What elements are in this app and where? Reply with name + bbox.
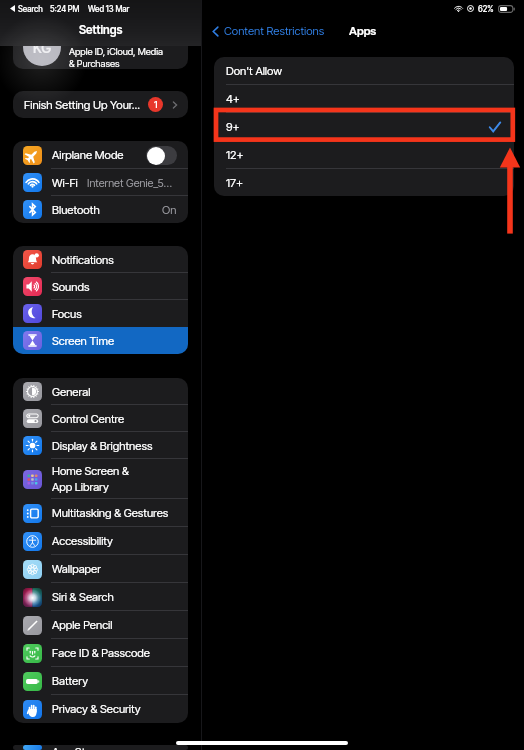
button[interactable]: Focus — [13, 300, 188, 327]
staticText: Home Screen & — [52, 464, 129, 478]
staticText: Screen Time — [52, 334, 115, 348]
button[interactable]: Control Centre — [13, 405, 188, 432]
staticText: Siri & Search — [52, 590, 114, 604]
staticText: Accessibility — [52, 534, 113, 548]
button[interactable]: Battery — [13, 667, 188, 695]
staticText: Focus — [52, 307, 82, 321]
staticText: 9+ — [226, 120, 240, 134]
button[interactable]: 4+ — [214, 85, 514, 112]
staticText: Battery — [52, 674, 89, 688]
staticText: Content Restrictions — [224, 24, 325, 38]
staticText: General — [52, 385, 91, 399]
staticText: Apps — [349, 24, 377, 38]
staticText: & Purchases — [69, 58, 120, 69]
staticText: Sounds — [52, 280, 90, 294]
button[interactable]: Don't Allow — [214, 57, 514, 84]
button[interactable]: Finish Setting Up Your... — [13, 91, 188, 118]
button[interactable]: Wi-Fi — [13, 169, 188, 196]
button[interactable]: Apple Pencil — [13, 611, 188, 639]
button[interactable]: Bluetooth — [13, 196, 188, 223]
staticText: Search — [18, 4, 43, 14]
staticText: App Store — [52, 745, 102, 750]
button[interactable]: KG — [13, 29, 188, 69]
staticText: Multitasking & Gestures — [52, 506, 169, 520]
button[interactable]: Accessibility — [13, 527, 188, 555]
staticText: Finish Setting Up Your... — [24, 98, 141, 112]
staticText: Don't Allow — [226, 64, 282, 78]
button[interactable]: Notifications — [13, 246, 188, 273]
staticText: 4+ — [226, 92, 240, 106]
staticText: 5:24 PM — [50, 4, 80, 14]
staticText: Airplane Mode — [52, 148, 124, 162]
staticText: Bluetooth — [52, 203, 100, 217]
button[interactable]: Sounds — [13, 273, 188, 300]
button[interactable]: Privacy & Security — [13, 695, 188, 723]
button[interactable]: Airplane Mode toggle — [146, 146, 177, 165]
staticText: Internet Genie_5G... — [87, 176, 177, 189]
staticText: Apple ID, iCloud, Media — [69, 46, 163, 57]
staticText: Notifications — [52, 253, 114, 267]
button[interactable]: App Store — [13, 745, 188, 750]
button[interactable]: Face ID & Passcode — [13, 639, 188, 667]
button[interactable]: Siri & Search — [13, 583, 188, 611]
button[interactable]: 12+ — [214, 141, 514, 168]
staticText: Control Centre — [52, 412, 125, 426]
staticText: 17+ — [226, 176, 244, 190]
staticText: Display & Brightness — [52, 439, 153, 453]
staticText: 62% — [478, 4, 494, 14]
staticText: App Library — [52, 480, 109, 494]
staticText: Wed 13 Mar — [88, 4, 130, 14]
button[interactable]: Wallpaper — [13, 555, 188, 583]
button[interactable]: 9+ — [214, 113, 514, 140]
staticText: Wi-Fi — [52, 176, 78, 190]
staticText: Settings — [79, 23, 123, 37]
staticText: Wallpaper — [52, 562, 101, 576]
button[interactable]: 17+ — [214, 169, 514, 196]
button[interactable]: Airplane Mode — [13, 141, 188, 169]
staticText: On — [162, 203, 177, 217]
staticText: 12+ — [226, 148, 244, 162]
button[interactable]: Screen Time — [13, 327, 188, 354]
button[interactable]: Multitasking & Gestures — [13, 499, 188, 527]
button[interactable]: Home Screen & — [13, 459, 188, 499]
staticText: Privacy & Security — [52, 702, 141, 716]
button[interactable]: Content Restrictions — [209, 24, 325, 38]
staticText: Apple Pencil — [52, 618, 113, 632]
button[interactable]: Display & Brightness — [13, 432, 188, 459]
staticText: Face ID & Passcode — [52, 646, 150, 660]
staticText: KG — [33, 39, 52, 56]
button[interactable]: General — [13, 378, 188, 405]
staticText: 1 — [154, 99, 158, 110]
